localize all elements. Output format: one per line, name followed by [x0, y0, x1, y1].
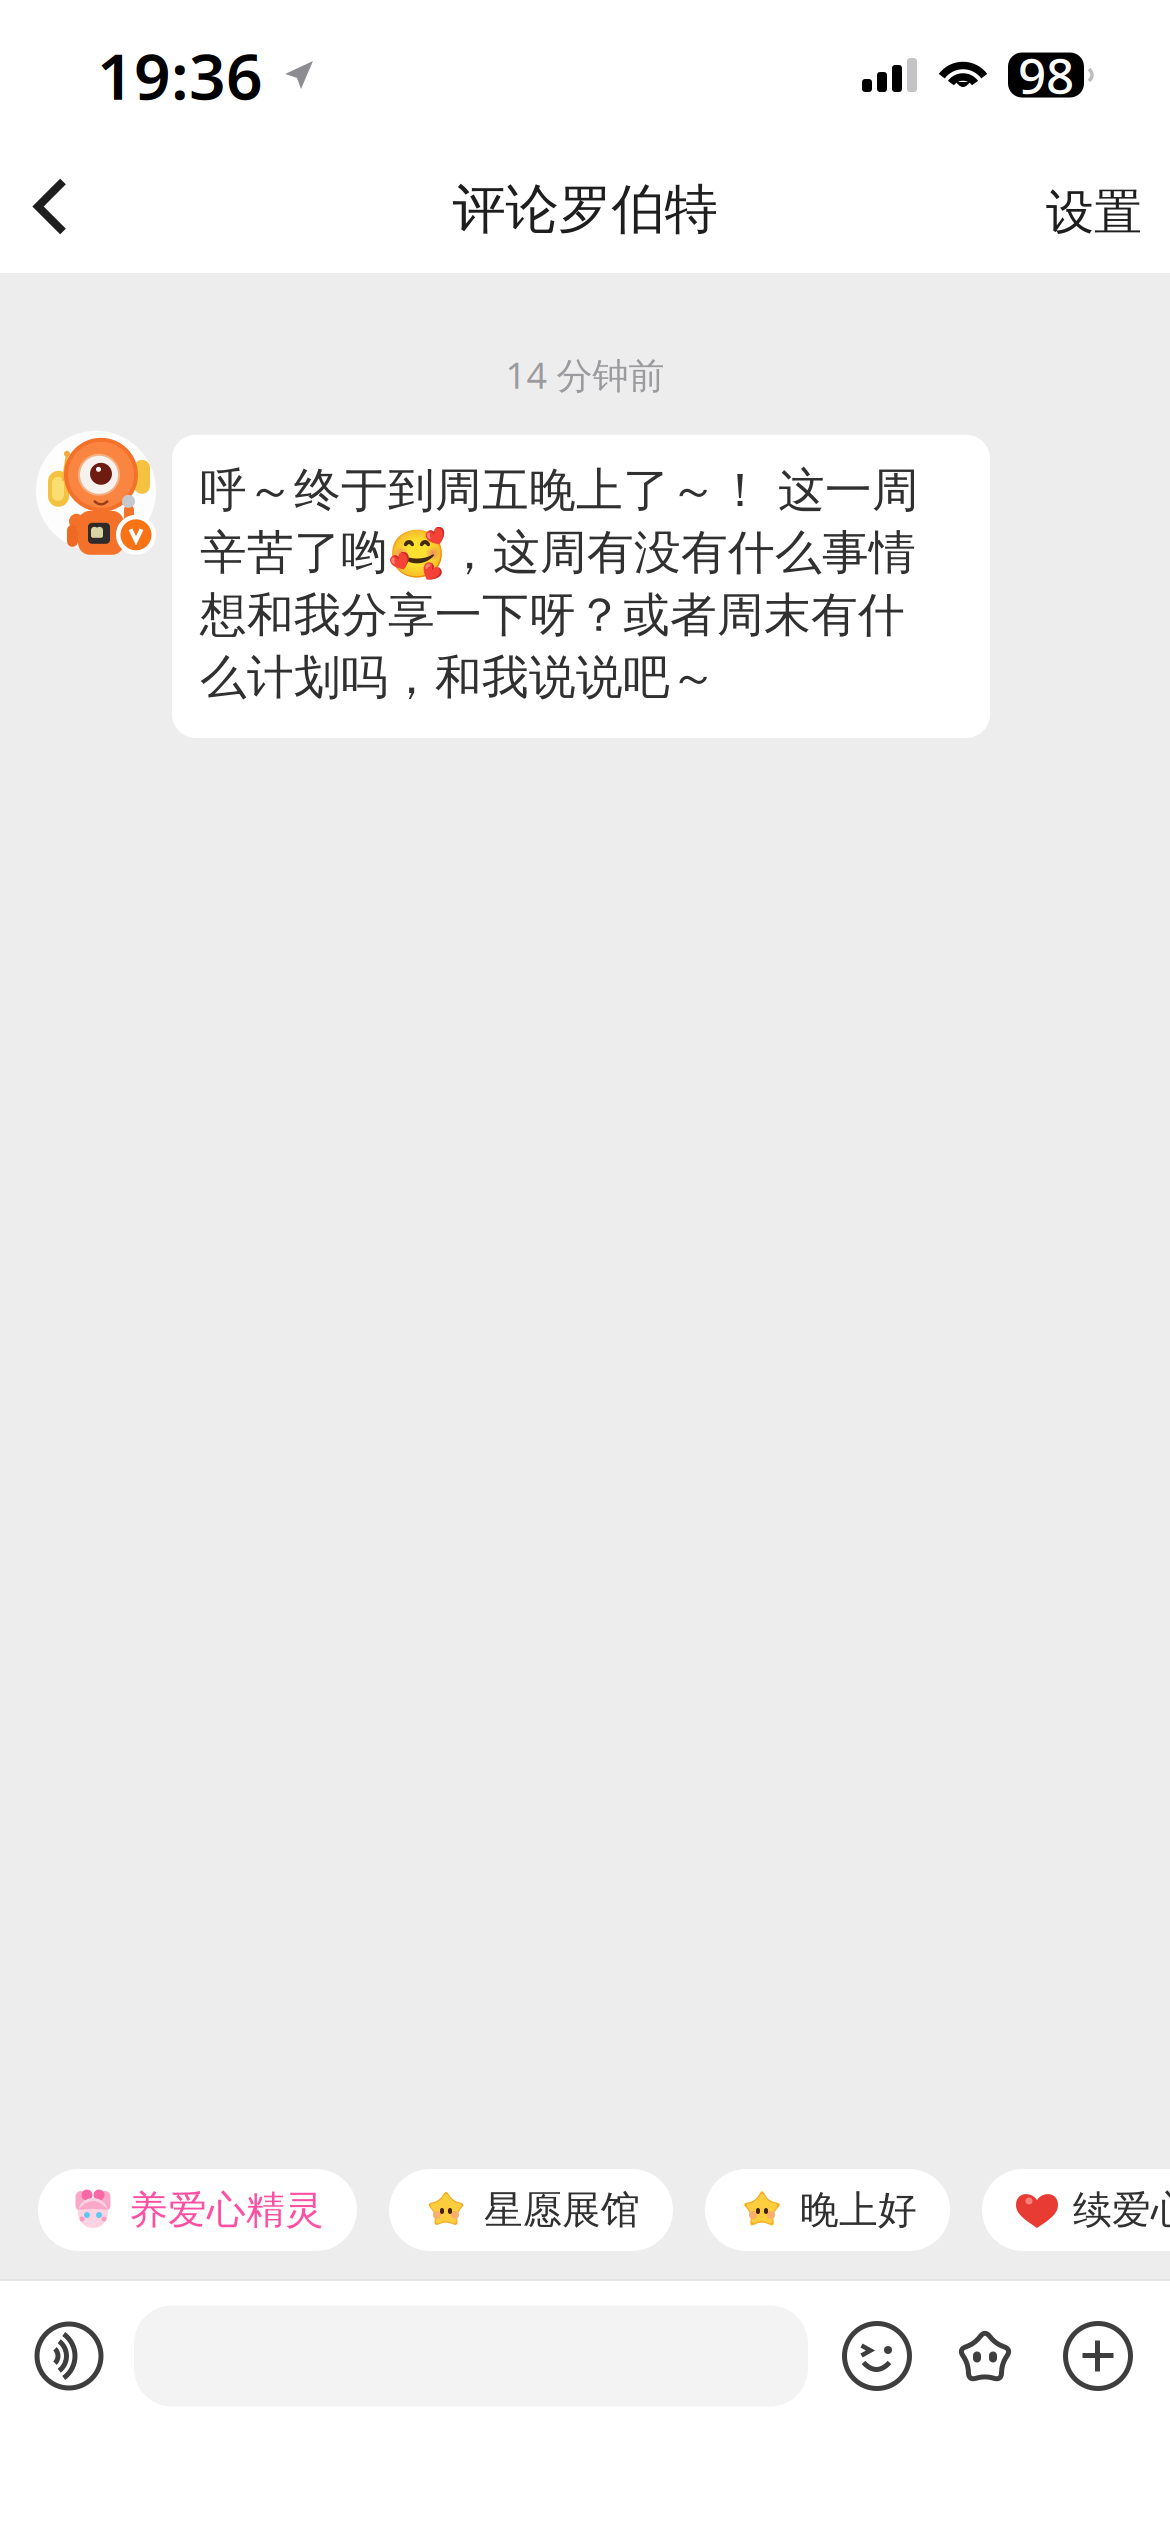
button[interactable]: 养爱心精灵	[38, 2169, 357, 2251]
staticText: 设置	[1046, 183, 1142, 242]
staticText: 19:36	[97, 32, 263, 117]
button[interactable]: 更多	[1064, 2322, 1132, 2390]
staticText: 养爱心精灵	[129, 2186, 324, 2234]
staticText: 续爱心	[1073, 2186, 1170, 2234]
staticText: 呼～终于到周五晚上了～！ 这一周辛苦了哟🥰，这周有没有什么事情想和我分享一下呀？…	[200, 462, 919, 706]
staticText: 14 分钟前	[505, 351, 664, 399]
button[interactable]: 返回	[0, 154, 108, 268]
staticText: 星愿展馆	[484, 2186, 640, 2234]
button[interactable]: 贴纸	[951, 2322, 1019, 2390]
button[interactable]: 晚上好	[705, 2169, 950, 2251]
button[interactable]: 语音	[35, 2322, 103, 2390]
button[interactable]: 续爱心	[982, 2169, 1170, 2251]
button[interactable]: 头像	[36, 431, 160, 555]
staticText: 98	[1018, 42, 1074, 108]
button[interactable]: 表情	[843, 2322, 911, 2390]
staticText: 评论罗伯特	[452, 177, 717, 242]
button[interactable]: 星愿展馆	[389, 2169, 673, 2251]
staticText: 晚上好	[800, 2186, 917, 2234]
button[interactable]: 设置	[1006, 145, 1170, 278]
